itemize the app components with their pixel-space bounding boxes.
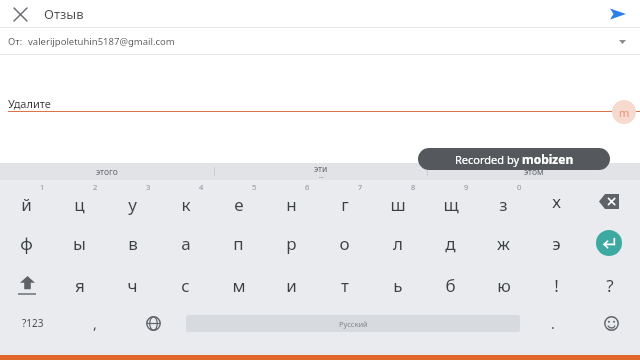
- button[interactable]: Change language: [124, 306, 182, 340]
- button[interactable]: ь: [371, 264, 424, 306]
- button[interactable]: э: [530, 222, 583, 264]
- button[interactable]: 5: [212, 180, 265, 222]
- button[interactable]: ж: [477, 222, 530, 264]
- staticText: Удалите: [8, 96, 51, 111]
- button[interactable]: 0: [477, 180, 530, 222]
- button[interactable]: 1: [0, 180, 53, 222]
- staticText: ?: [606, 274, 614, 297]
- button[interactable]: т: [318, 264, 371, 306]
- button[interactable]: и: [265, 264, 318, 306]
- other: Expand: [610, 28, 634, 55]
- button[interactable]: м: [212, 264, 265, 306]
- staticText: 7: [358, 182, 363, 192]
- button[interactable]: эти: [214, 163, 427, 180]
- staticText: м: [232, 274, 246, 297]
- staticText: 8: [411, 182, 416, 192]
- staticText: ц: [74, 193, 85, 216]
- staticText: э: [552, 232, 561, 255]
- button[interactable]: От:: [0, 28, 640, 55]
- staticText: mobizen: [522, 151, 574, 167]
- staticText: у: [128, 193, 137, 216]
- button[interactable]: в: [106, 222, 159, 264]
- button[interactable]: с: [159, 264, 212, 306]
- button[interactable]: 3: [106, 180, 159, 222]
- button[interactable]: л: [371, 222, 424, 264]
- button[interactable]: Emoji: [582, 306, 640, 340]
- button[interactable]: !: [530, 264, 583, 306]
- staticText: з: [499, 193, 508, 216]
- staticText: т: [341, 274, 349, 297]
- button[interactable]: я: [53, 264, 106, 306]
- button[interactable]: Enter: [583, 222, 635, 264]
- button[interactable]: б: [424, 264, 477, 306]
- staticText: 2: [93, 182, 98, 192]
- staticText: ,: [93, 314, 97, 333]
- staticText: щ: [443, 193, 459, 216]
- staticText: д: [445, 232, 456, 255]
- button[interactable]: Shift: [0, 264, 53, 306]
- button[interactable]: х: [530, 180, 583, 222]
- button[interactable]: 4: [159, 180, 212, 222]
- staticText: й: [21, 193, 32, 216]
- button[interactable]: а: [159, 222, 212, 264]
- staticText: б: [445, 274, 456, 297]
- button[interactable]: Send: [596, 0, 640, 28]
- staticText: ч: [127, 274, 138, 297]
- staticText: 9: [464, 182, 469, 192]
- button[interactable]: ю: [477, 264, 530, 306]
- button[interactable]: ?: [583, 264, 636, 306]
- button[interactable]: 6: [265, 180, 318, 222]
- button[interactable]: 9: [424, 180, 477, 222]
- button[interactable]: Backspace: [583, 180, 635, 222]
- staticText: эти: [314, 163, 328, 175]
- button[interactable]: ы: [53, 222, 106, 264]
- staticText: л: [393, 232, 403, 255]
- button[interactable]: Close: [0, 0, 40, 28]
- staticText: Recorded by: [455, 152, 522, 167]
- staticText: От:: [8, 35, 23, 48]
- staticText: г: [341, 193, 349, 216]
- staticText: 1: [40, 182, 45, 192]
- staticText: ш: [390, 193, 406, 216]
- staticText: ф: [20, 232, 33, 255]
- staticText: этом: [524, 166, 544, 178]
- button[interactable]: ф: [0, 222, 53, 264]
- staticText: Отзыв: [44, 5, 84, 23]
- staticText: 6: [305, 182, 310, 192]
- button[interactable]: ,: [66, 306, 124, 340]
- button[interactable]: .: [524, 306, 582, 340]
- staticText: 5: [252, 182, 257, 192]
- staticText: о: [339, 232, 350, 255]
- button[interactable]: 7: [318, 180, 371, 222]
- staticText: п: [233, 232, 244, 255]
- staticText: с: [181, 274, 190, 297]
- button[interactable]: 2: [53, 180, 106, 222]
- staticText: этого: [96, 166, 118, 178]
- button[interactable]: Удалите: [8, 66, 640, 112]
- staticText: .: [551, 314, 555, 333]
- staticText: е: [234, 193, 244, 216]
- staticText: ?123: [22, 316, 44, 330]
- staticText: ж: [497, 232, 510, 255]
- staticText: а: [181, 232, 191, 255]
- button[interactable]: 8: [371, 180, 424, 222]
- button[interactable]: ч: [106, 264, 159, 306]
- button[interactable]: этого: [0, 163, 214, 180]
- staticText: valerijpoletuhin5187@gmail.com: [28, 35, 175, 48]
- button[interactable]: о: [318, 222, 371, 264]
- staticText: ы: [73, 232, 86, 255]
- staticText: •••: [319, 175, 324, 180]
- button[interactable]: этом: [427, 163, 640, 180]
- staticText: 3: [146, 182, 151, 192]
- button[interactable]: ?123: [0, 306, 66, 340]
- button[interactable]: Русский: [186, 315, 520, 332]
- button[interactable]: д: [424, 222, 477, 264]
- button[interactable]: р: [265, 222, 318, 264]
- staticText: ю: [497, 274, 511, 297]
- staticText: к: [181, 193, 191, 216]
- button[interactable]: п: [212, 222, 265, 264]
- staticText: !: [554, 274, 559, 297]
- staticText: 0: [517, 182, 522, 192]
- staticText: в: [128, 232, 138, 255]
- staticText: х: [552, 190, 561, 213]
